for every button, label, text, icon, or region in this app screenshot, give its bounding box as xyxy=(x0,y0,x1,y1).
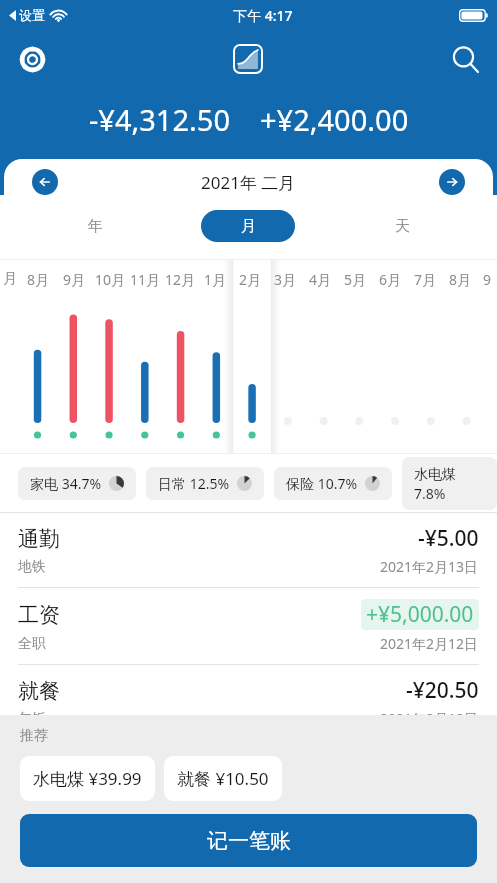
staticText: 3月 xyxy=(274,270,297,289)
staticText: 8月 xyxy=(449,270,472,289)
staticText: 2月 xyxy=(239,270,262,289)
button[interactable]: 工资 xyxy=(0,588,497,664)
staticText: 下午 4:17 xyxy=(233,6,293,25)
staticText: 午饭 xyxy=(18,710,46,728)
button[interactable]: 记一笔账 xyxy=(20,814,477,867)
button[interactable]: Next month xyxy=(439,169,465,195)
staticText: 家电 34.7% xyxy=(30,474,102,493)
staticText: 12月 xyxy=(165,270,196,289)
staticText: 记一笔账 xyxy=(207,828,291,854)
staticText: 全职 xyxy=(18,635,46,653)
button[interactable]: 水电煤 7.8% xyxy=(402,457,497,510)
button[interactable]: Search xyxy=(439,33,491,85)
staticText: 通勤 xyxy=(18,526,60,552)
staticText: 7月 xyxy=(414,270,437,289)
staticText: 日常 12.5% xyxy=(158,474,230,493)
staticText: 就餐 xyxy=(18,678,60,704)
staticText: 水电煤 7.8% xyxy=(414,464,485,503)
staticText: -¥5.00 xyxy=(418,524,479,553)
staticText: 推荐 xyxy=(20,727,48,745)
button[interactable]: 水电煤 ¥39.99 xyxy=(20,756,155,801)
button[interactable]: Settings xyxy=(6,33,58,85)
staticText: 8月 xyxy=(27,270,50,289)
staticText: 10月 xyxy=(95,270,126,289)
button[interactable]: 保险 10.7% xyxy=(274,467,392,500)
staticText: 保险 10.7% xyxy=(286,474,358,493)
staticText: 2021年2月12日 xyxy=(380,634,479,653)
button[interactable]: 天 xyxy=(367,210,437,242)
button[interactable]: 日常 12.5% xyxy=(146,467,264,500)
staticText: -¥4,312.50 xyxy=(89,100,230,139)
staticText: 4月 xyxy=(309,270,332,289)
staticText: 2021年2月12日 xyxy=(380,709,479,728)
staticText: -¥20.50 xyxy=(406,676,479,705)
staticText: 6月 xyxy=(379,270,402,289)
staticText: 1月 xyxy=(204,270,227,289)
staticText: +¥2,400.00 xyxy=(260,100,409,139)
button[interactable]: 年 xyxy=(60,210,130,242)
staticText: 水电煤 ¥39.99 xyxy=(33,767,142,790)
staticText: 月 xyxy=(3,270,17,288)
staticText: 地铁 xyxy=(18,558,46,576)
staticText: 5月 xyxy=(344,270,367,289)
staticText: 11月 xyxy=(130,270,161,289)
staticText: 年 xyxy=(88,217,103,236)
staticText: 2021年 二月 xyxy=(201,171,296,194)
button[interactable]: 就餐 ¥10.50 xyxy=(164,756,282,801)
button[interactable]: 就餐 xyxy=(0,665,497,739)
button[interactable]: 家电 34.7% xyxy=(18,467,136,500)
staticText: 9月 xyxy=(63,270,86,289)
staticText: 月 xyxy=(241,217,256,236)
staticText: +¥5,000.00 xyxy=(366,600,474,629)
staticText: 天 xyxy=(395,217,410,236)
button[interactable]: 月 xyxy=(201,210,295,242)
staticText: 工资 xyxy=(18,602,60,628)
staticText: 2021年2月13日 xyxy=(380,557,479,576)
staticText: 设置 xyxy=(19,7,45,23)
button[interactable]: Statistics chart xyxy=(222,33,274,85)
button[interactable]: Previous month xyxy=(32,169,58,195)
button[interactable]: 通勤 xyxy=(0,513,497,587)
staticText: 就餐 ¥10.50 xyxy=(177,767,269,790)
staticText: 9 xyxy=(483,270,492,289)
